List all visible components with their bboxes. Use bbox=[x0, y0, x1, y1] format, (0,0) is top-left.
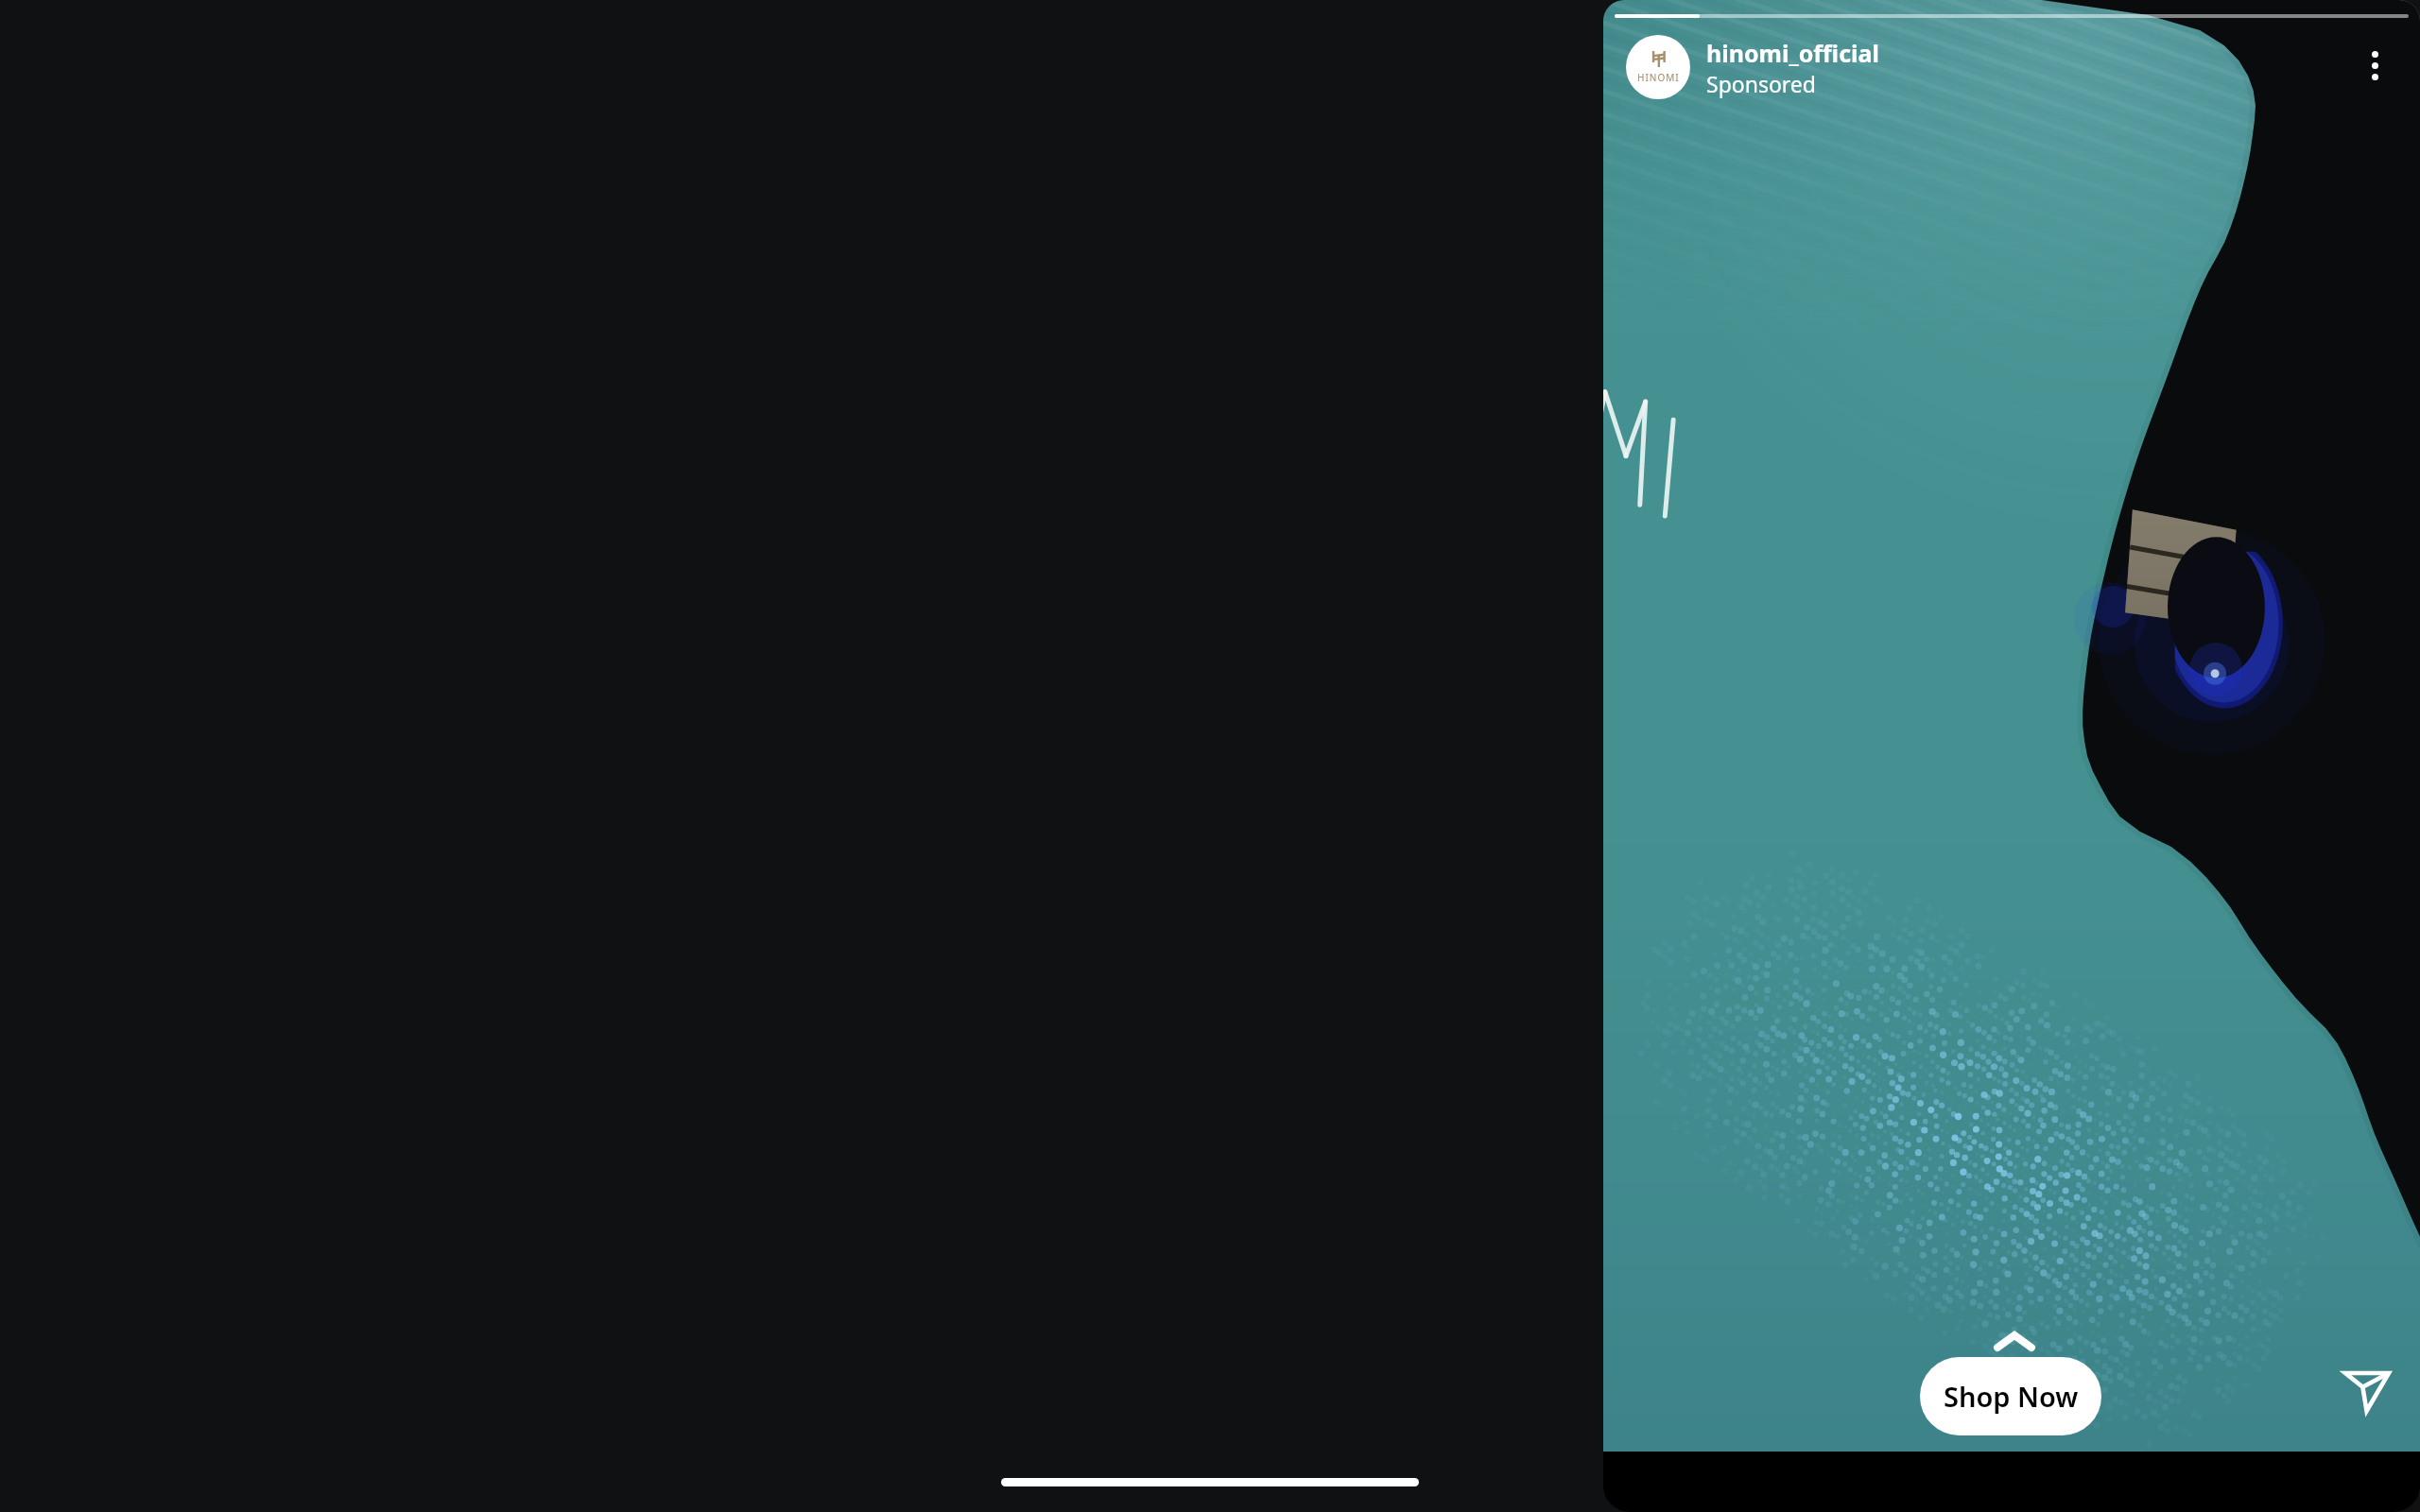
staticText: Sponsored bbox=[1706, 69, 1816, 98]
button[interactable]: More options bbox=[2353, 43, 2396, 87]
button[interactable]: Share bbox=[2328, 1353, 2406, 1431]
button[interactable]: Swipe up for more bbox=[1979, 1319, 2050, 1363]
staticText: Shop Now bbox=[1944, 1378, 2079, 1415]
staticText: HINOMI bbox=[1637, 71, 1680, 84]
button[interactable]: Shop Now bbox=[1920, 1357, 2101, 1435]
staticText: hinomi_official bbox=[1706, 37, 1879, 69]
button[interactable]: HINOMI bbox=[1626, 35, 1879, 99]
